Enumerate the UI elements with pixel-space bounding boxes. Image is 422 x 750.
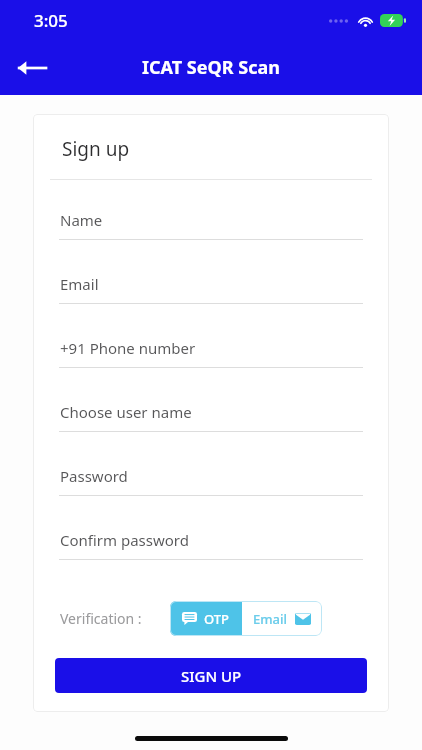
staticText: OTP [204, 610, 230, 628]
button[interactable]: +91 Phone number [49, 338, 373, 402]
staticText: Password [60, 466, 128, 486]
staticText: Name [60, 210, 103, 230]
button[interactable]: Email [242, 601, 322, 636]
button[interactable]: Back [8, 44, 56, 92]
button[interactable]: OTP [170, 601, 242, 636]
button[interactable]: SIGN UP [55, 658, 367, 693]
staticText: Email [60, 274, 99, 294]
button[interactable]: Name [49, 210, 373, 274]
staticText: ICAT SeQR Scan [142, 55, 280, 80]
button[interactable]: Confirm password [49, 530, 373, 594]
staticText: 3:05 [34, 9, 68, 32]
staticText: Email [253, 610, 288, 628]
staticText: Sign up [62, 136, 130, 162]
staticText: Choose user name [60, 402, 192, 422]
staticText: +91 Phone number [60, 338, 196, 358]
staticText: Confirm password [60, 530, 189, 550]
staticText: Verification : [60, 609, 142, 628]
button[interactable]: Email [49, 274, 373, 338]
staticText: SIGN UP [181, 666, 242, 686]
button[interactable]: Password [49, 466, 373, 530]
button[interactable]: Choose user name [49, 402, 373, 466]
